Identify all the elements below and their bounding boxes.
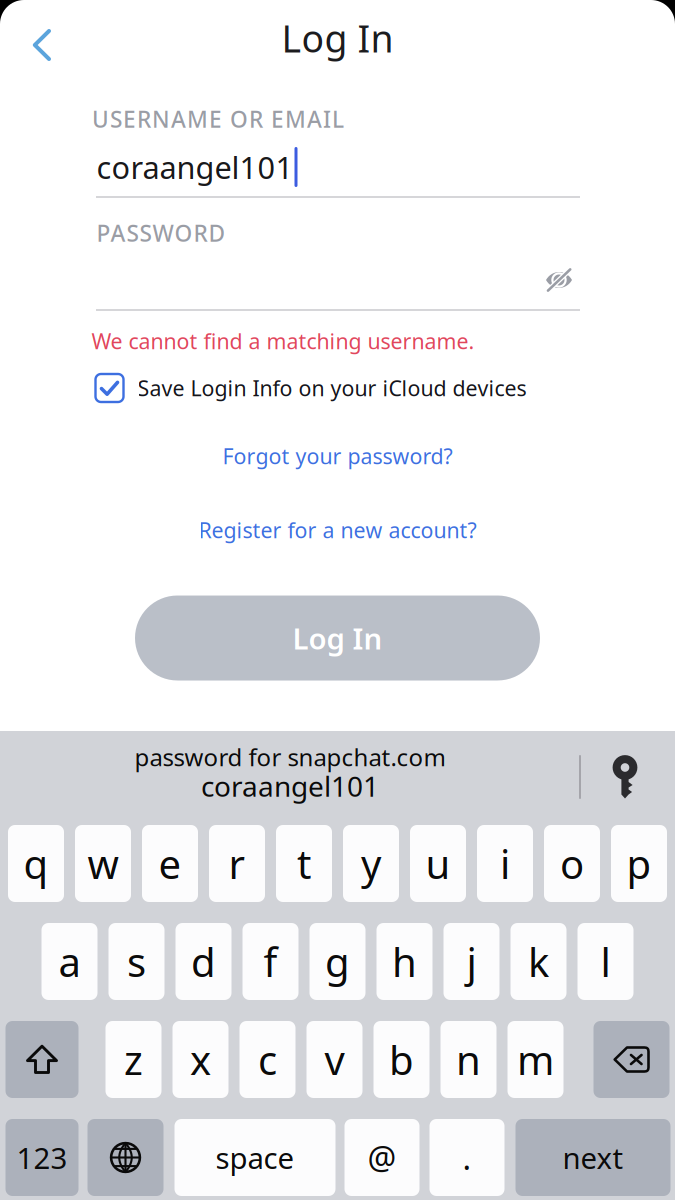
staticText: coraangel101 [201,767,379,805]
button[interactable]: l [577,923,633,1000]
button[interactable]: Save Login Info on your iCloud devices [95,371,526,405]
staticText: z [124,1033,143,1086]
button[interactable]: t [276,825,332,902]
button[interactable]: e [142,825,198,902]
button[interactable]: a [41,923,97,1000]
staticText: . [462,1136,471,1179]
staticText: a [58,935,80,988]
staticText: password for snapchat.com [134,741,445,773]
button[interactable]: n [440,1021,496,1098]
button[interactable]: Log In [135,595,540,680]
button[interactable]: z [105,1021,161,1098]
staticText: r [228,837,245,890]
button[interactable]: Register for a new account? [137,508,537,552]
staticText: s [127,935,146,988]
button[interactable]: p [611,825,667,902]
button[interactable]: Forgot your password? [137,434,537,478]
button[interactable]: Shift [5,1021,78,1098]
staticText: f [263,935,277,988]
staticText: coraangel101 [96,147,293,187]
staticText: Log In [281,13,393,63]
staticText: b [389,1033,414,1086]
button[interactable]: x [172,1021,228,1098]
button[interactable]: g [309,923,365,1000]
button[interactable]: space [174,1119,335,1196]
staticText: Save Login Info on your iCloud devices [137,374,526,402]
button[interactable]: next [515,1119,670,1196]
button[interactable]: q [8,825,64,902]
button[interactable]: r [209,825,265,902]
staticText: n [456,1033,481,1086]
staticText: space [215,1138,294,1177]
staticText: 123 [16,1138,67,1177]
button[interactable]: c [239,1021,295,1098]
button[interactable]: . [429,1119,504,1196]
button[interactable]: Back [19,22,65,68]
staticText: e [158,837,181,890]
staticText: o [560,837,584,890]
staticText: We cannot find a matching username. [91,327,474,355]
staticText: l [600,935,610,988]
button[interactable]: Delete [593,1021,669,1098]
button[interactable]: 123 [5,1119,78,1196]
button[interactable]: d [175,923,231,1000]
button[interactable]: o [544,825,600,902]
button[interactable]: w [75,825,131,902]
button[interactable]: Next keyboard [87,1119,163,1196]
staticText: g [325,935,350,988]
staticText: x [190,1033,211,1086]
staticText: d [191,935,216,988]
staticText: i [500,837,510,890]
staticText: USERNAME OR EMAIL [92,104,344,134]
staticText: @ [367,1136,396,1179]
staticText: w [87,837,118,890]
staticText: c [258,1033,277,1086]
staticText: j [466,935,476,988]
staticText: q [23,837,48,890]
button[interactable]: b [373,1021,429,1098]
staticText: PASSWORD [96,218,225,248]
button[interactable]: i [477,825,533,902]
staticText: v [324,1033,344,1086]
staticText: Forgot your password? [222,442,452,470]
button[interactable]: j [443,923,499,1000]
button[interactable]: s [108,923,164,1000]
staticText: h [392,935,417,988]
staticText: u [425,837,450,890]
button[interactable]: v [306,1021,362,1098]
staticText: Log In [292,618,382,657]
staticText: m [517,1033,554,1086]
staticText: t [297,837,311,890]
button[interactable]: f [242,923,298,1000]
staticText: next [562,1138,623,1177]
button[interactable]: k [510,923,566,1000]
button[interactable]: Show password [539,262,579,298]
staticText: k [528,935,549,988]
button[interactable]: @ [344,1119,419,1196]
button[interactable]: h [376,923,432,1000]
button[interactable]: u [410,825,466,902]
button[interactable]: m [507,1021,563,1098]
staticText: Register for a new account? [198,516,476,544]
staticText: p [626,837,651,890]
button[interactable]: Passwords [611,754,641,799]
staticText: y [361,837,381,890]
button[interactable]: y [343,825,399,902]
